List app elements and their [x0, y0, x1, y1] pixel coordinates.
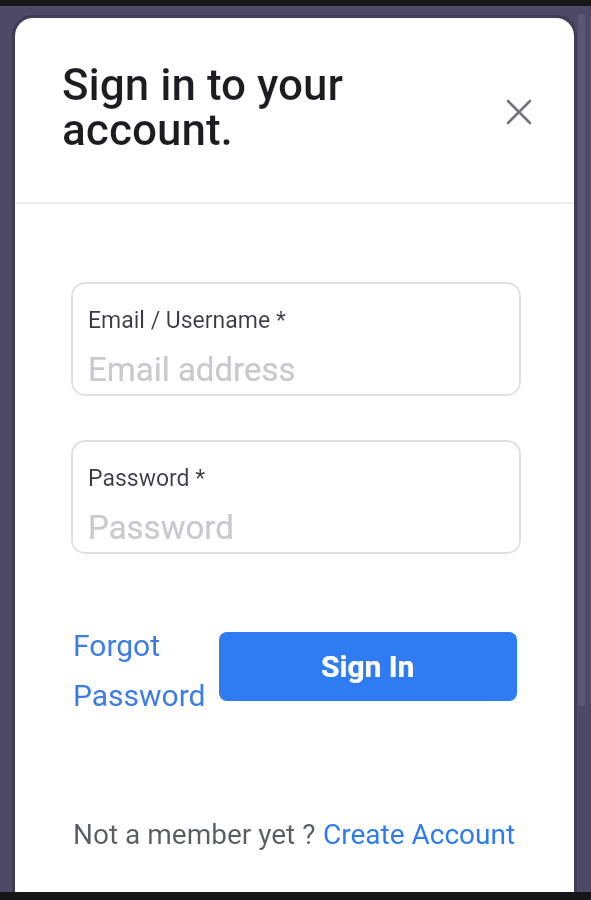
- button[interactable]: Password *: [71, 440, 521, 554]
- button[interactable]: Forgot Password: [73, 628, 206, 713]
- button[interactable]: Sign In: [219, 632, 517, 701]
- button[interactable]: [490, 82, 548, 140]
- staticText: Not a member yet ?: [73, 818, 323, 851]
- button[interactable]: Email / Username *: [71, 282, 521, 396]
- staticText: Create Account: [323, 818, 516, 851]
- button[interactable]: Create Account: [323, 818, 516, 851]
- staticText: Password *: [88, 465, 206, 492]
- staticText: Sign in to your account.: [62, 59, 343, 156]
- staticText: Forgot Password: [73, 628, 206, 713]
- staticText: Sign In: [321, 649, 415, 684]
- staticText: Password: [88, 508, 234, 547]
- staticText: Email address: [88, 350, 296, 389]
- staticText: Email / Username *: [88, 307, 286, 334]
